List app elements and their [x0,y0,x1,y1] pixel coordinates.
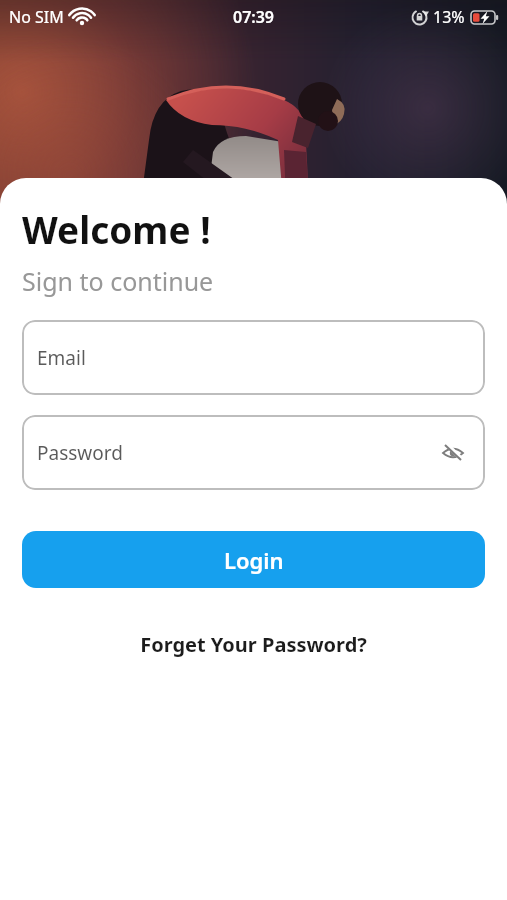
staticText: No SIM [9,6,64,28]
staticText: Welcome ! [22,204,211,254]
staticText: Email [37,345,86,371]
button[interactable]: Login [22,531,485,588]
staticText: 07:39 [233,6,275,28]
staticText: Login [224,545,284,575]
button[interactable]: Forget Your Password? [140,631,367,658]
staticText: 13% [433,6,465,28]
button[interactable]: Password [22,415,485,490]
button[interactable]: Email [22,320,485,395]
staticText: Sign to continue [22,264,214,298]
staticText: Password [37,440,123,466]
